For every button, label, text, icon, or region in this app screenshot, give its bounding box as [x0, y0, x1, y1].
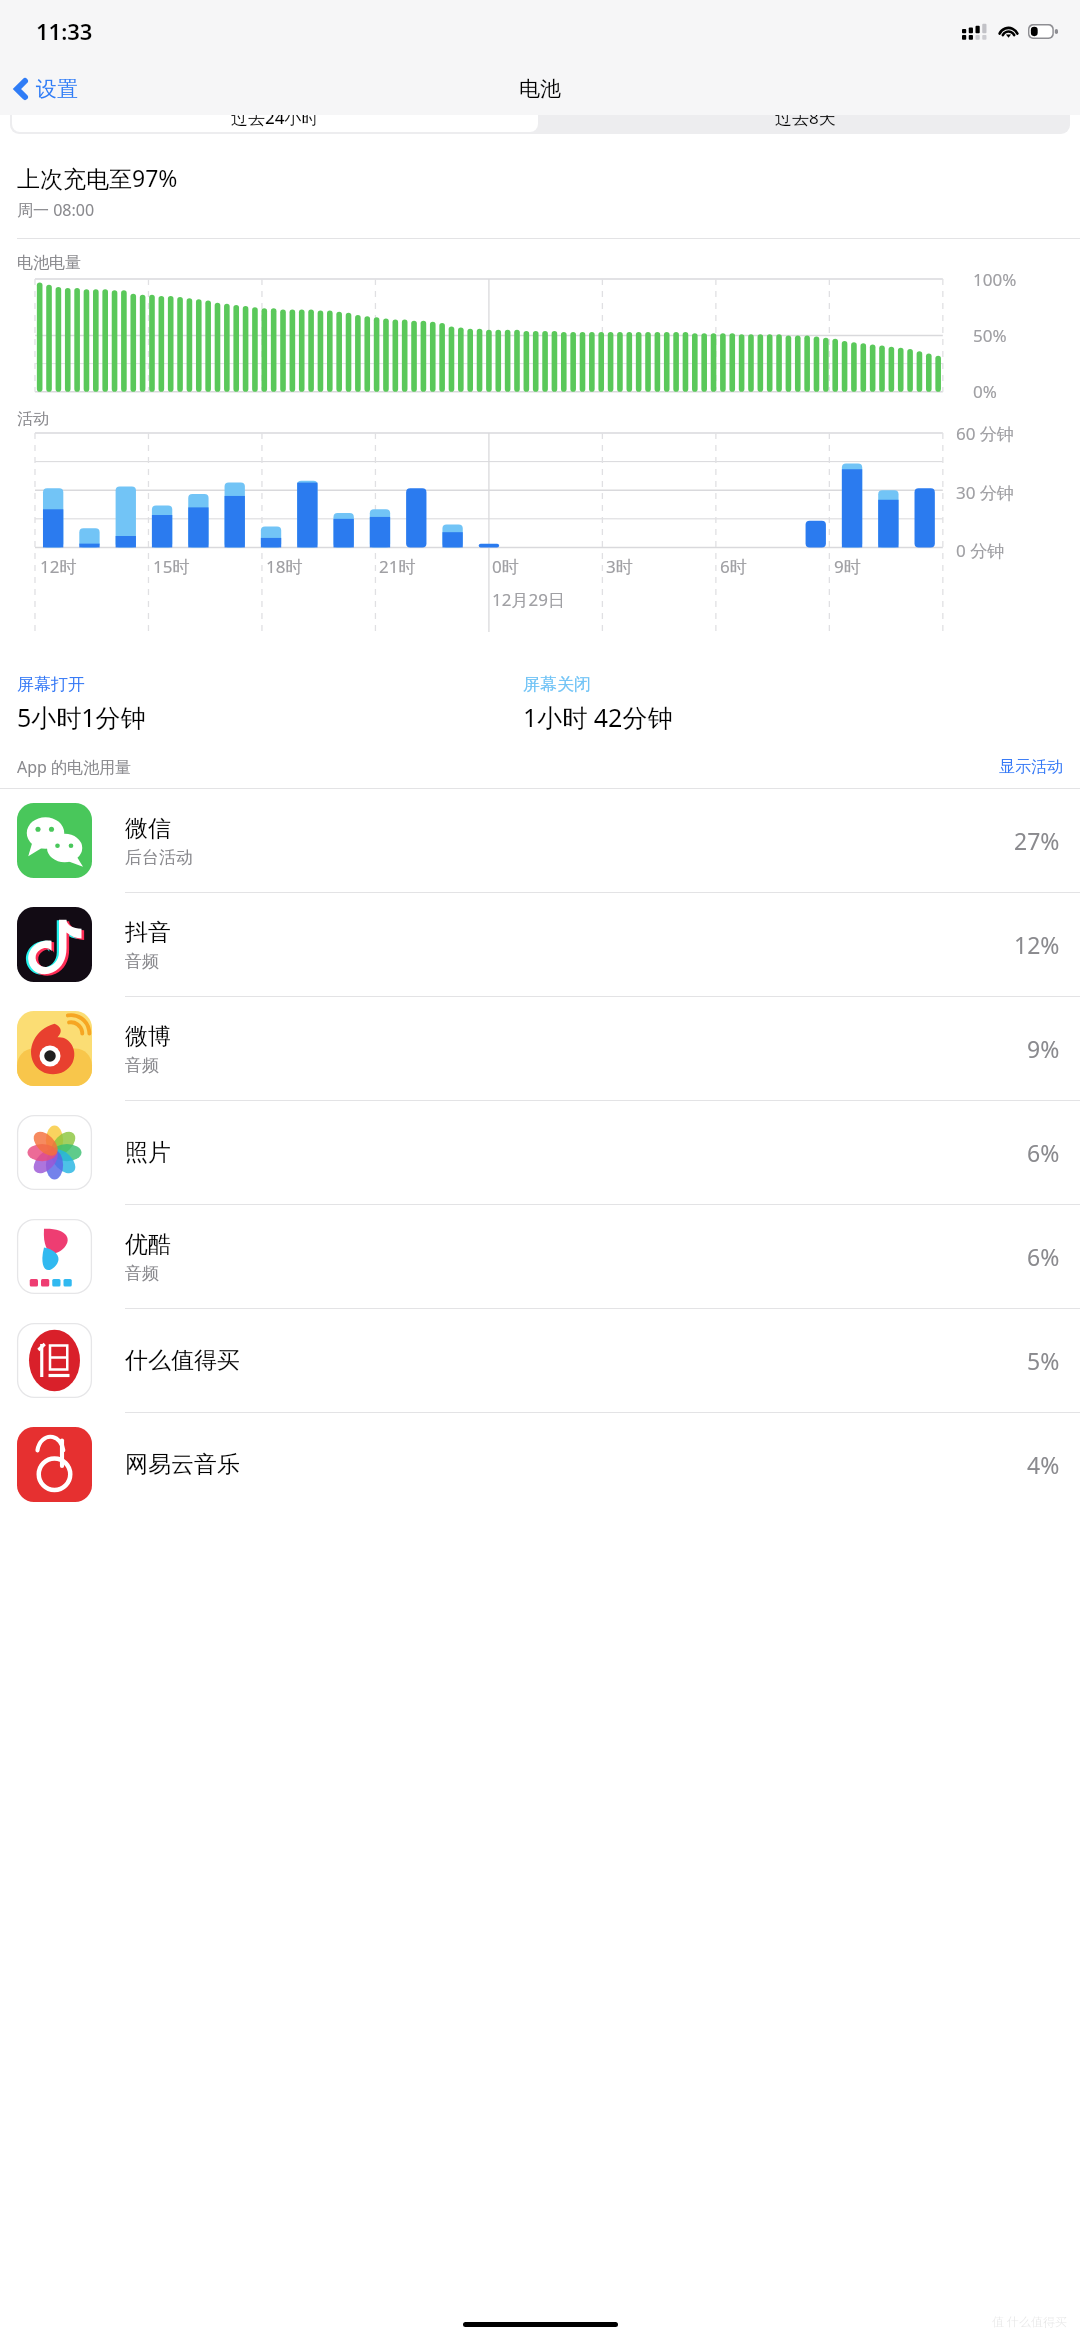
staticText: 0%: [973, 380, 997, 403]
staticText: 21时: [379, 555, 416, 578]
staticText: 过去24小时: [231, 115, 319, 129]
staticText: 照片: [125, 1138, 171, 1167]
staticText: 60 分钟: [956, 422, 1014, 445]
staticText: 9时: [834, 555, 861, 578]
button[interactable]: 微信: [0, 789, 1080, 892]
staticText: 电池电量: [17, 253, 81, 273]
staticText: 1小时 42分钟: [523, 700, 673, 734]
staticText: 6%: [1027, 1241, 1060, 1272]
staticText: 微信: [125, 814, 171, 843]
button[interactable]: 照片: [0, 1101, 1080, 1204]
staticText: 什么值得买: [125, 1346, 240, 1375]
staticText: 微博: [125, 1022, 171, 1051]
staticText: 11:33: [36, 16, 93, 46]
staticText: 设置: [36, 76, 78, 102]
staticText: 50%: [973, 324, 1007, 347]
staticText: 屏幕关闭: [523, 674, 591, 695]
staticText: 活动: [17, 409, 49, 429]
button[interactable]: 显示活动: [999, 757, 1063, 777]
staticText: 12月29日: [492, 588, 565, 611]
staticText: 6时: [720, 555, 747, 578]
staticText: 后台活动: [125, 847, 193, 868]
button[interactable]: Back: [0, 68, 90, 110]
other: Battery: [1028, 24, 1058, 39]
staticText: 过去8天: [775, 115, 836, 129]
staticText: 上次充电至97%: [17, 162, 178, 193]
staticText: 3时: [606, 555, 633, 578]
staticText: 5小时1分钟: [17, 700, 146, 734]
staticText: 网易云音乐: [125, 1450, 240, 1479]
staticText: 屏幕打开: [17, 674, 85, 695]
staticText: 周一 08:00: [17, 199, 95, 221]
button[interactable]: 网易云音乐: [0, 1413, 1080, 1516]
staticText: 音频: [125, 951, 159, 972]
other: Wi-Fi: [998, 24, 1019, 39]
staticText: 30 分钟: [956, 481, 1014, 504]
button[interactable]: 微博: [0, 997, 1080, 1100]
staticText: 4%: [1027, 1449, 1060, 1480]
staticText: 电池: [519, 76, 561, 102]
button[interactable]: 优酷: [0, 1205, 1080, 1308]
other: Back: [14, 78, 27, 100]
staticText: 抖音: [125, 918, 171, 947]
button[interactable]: 抖音: [0, 893, 1080, 996]
staticText: 音频: [125, 1055, 159, 1076]
staticText: 0 分钟: [956, 539, 1005, 562]
staticText: 100%: [973, 268, 1017, 291]
button[interactable]: 过去24小时: [12, 115, 538, 132]
staticText: 27%: [1014, 825, 1060, 856]
staticText: 9%: [1027, 1033, 1060, 1064]
staticText: App 的电池用量: [17, 756, 132, 778]
staticText: 显示活动: [999, 757, 1063, 777]
staticText: 优酷: [125, 1230, 171, 1259]
button[interactable]: 什么值得买: [0, 1309, 1080, 1412]
staticText: 15时: [153, 555, 190, 578]
staticText: 12%: [1014, 929, 1060, 960]
other: Cellular signal: [962, 23, 989, 40]
staticText: 18时: [266, 555, 303, 578]
staticText: 音频: [125, 1263, 159, 1284]
staticText: 5%: [1027, 1345, 1060, 1376]
staticText: 12时: [40, 555, 77, 578]
staticText: 0时: [492, 555, 519, 578]
staticText: 6%: [1027, 1137, 1060, 1168]
button[interactable]: 过去8天: [540, 115, 1070, 134]
staticText: 值 什么值得买: [992, 2313, 1068, 2329]
